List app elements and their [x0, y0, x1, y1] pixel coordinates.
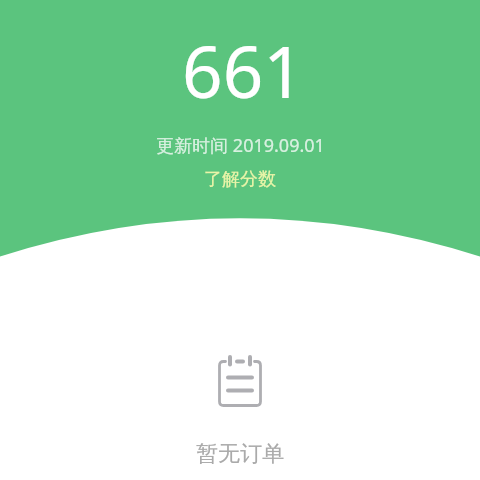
staticText: 更新时间 2019.09.01 [156, 133, 325, 158]
staticText: 了解分数 [204, 168, 276, 191]
staticText: 661 [182, 22, 304, 119]
button[interactable]: 了解分数 [190, 164, 290, 195]
other: No orders [218, 354, 262, 407]
staticText: 暂无订单 [196, 440, 284, 468]
